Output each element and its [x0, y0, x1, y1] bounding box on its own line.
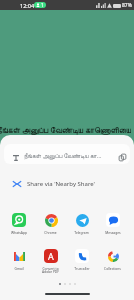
button[interactable]: Telegram	[66, 213, 97, 234]
button[interactable]: Messages	[97, 213, 128, 234]
staticText: Truecaller	[74, 266, 90, 270]
staticText: WhatsApp	[11, 230, 27, 234]
staticText: நீங்கள் அனுப்ப வேண்டிய காணொளியைப் பதிவிற…	[0, 124, 131, 135]
button[interactable]: WhatsApp	[3, 213, 35, 234]
button[interactable]	[4, 144, 130, 164]
button[interactable]: Gmail	[3, 249, 35, 270]
staticText: 87%	[122, 2, 132, 9]
button[interactable]: Collections	[97, 249, 128, 270]
staticText: A	[48, 250, 54, 262]
button[interactable]: Copy	[115, 150, 129, 164]
staticText: Messages	[105, 230, 121, 234]
button[interactable]: Truecaller	[66, 249, 97, 270]
staticText: Convert to Adobe PDF	[42, 266, 59, 274]
button[interactable]: Share via 'Nearby Share'	[0, 177, 134, 191]
staticText: 1	[41, 2, 44, 8]
staticText: Collections	[104, 266, 121, 270]
staticText: Share via 'Nearby Share'	[27, 180, 95, 188]
button[interactable]: A	[35, 249, 66, 274]
staticText: Telegram	[74, 230, 89, 234]
staticText: Chrome	[44, 230, 57, 234]
staticText: Gmail	[14, 266, 24, 270]
staticText: 12:04	[20, 2, 35, 9]
button[interactable]: Chrome	[35, 213, 66, 234]
staticText: நீங்கள் அனுப்ப வேண்டிய கா…	[24, 152, 124, 160]
